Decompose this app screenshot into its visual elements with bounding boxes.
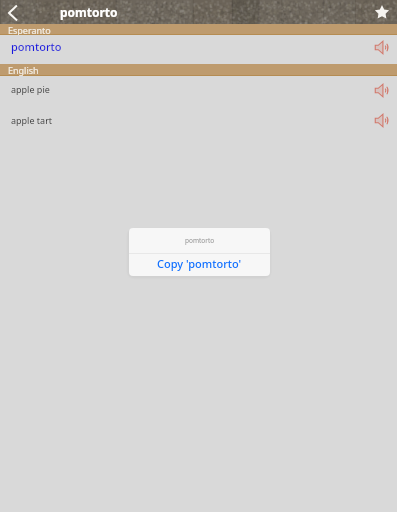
staticText: apple pie bbox=[11, 83, 50, 95]
staticText: pomtorto bbox=[60, 4, 118, 20]
staticText: Esperanto bbox=[8, 24, 51, 35]
staticText: Copy 'pomtorto' bbox=[157, 256, 242, 271]
button[interactable]: Play pronunciation bbox=[369, 108, 393, 132]
button[interactable]: Copy 'pomtorto' bbox=[129, 254, 270, 276]
button[interactable]: Favorite bbox=[369, 0, 395, 24]
staticText: pomtorto bbox=[185, 236, 215, 245]
button[interactable]: Play pronunciation bbox=[369, 35, 393, 59]
button[interactable]: apple tart bbox=[0, 106, 397, 136]
button[interactable]: pomtorto bbox=[0, 35, 397, 63]
button[interactable]: Back bbox=[0, 0, 26, 24]
staticText: apple tart bbox=[11, 114, 53, 126]
staticText: English bbox=[8, 64, 39, 76]
button[interactable]: apple pie bbox=[0, 76, 397, 106]
staticText: pomtorto bbox=[11, 39, 62, 54]
button[interactable]: Play pronunciation bbox=[369, 78, 393, 102]
